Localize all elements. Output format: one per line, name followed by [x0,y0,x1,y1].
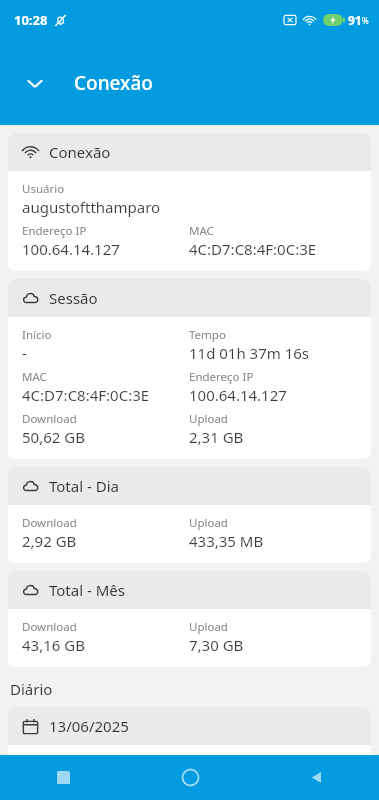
staticText: 11d 01h 37m 16s [189,343,310,363]
staticText: Upload [189,515,228,531]
button[interactable]: 13/06/2025 [8,707,371,800]
button[interactable]: Início [127,755,253,800]
staticText: 4C:D7:C8:4F:0C:3E [22,385,150,405]
staticText: Conexão [74,70,153,96]
staticText: Download [22,515,77,531]
staticText: Upload [189,411,228,427]
button[interactable]: Total - Mês [8,571,371,667]
button[interactable]: Voltar [253,755,379,800]
staticText: 43,16 GB [22,635,85,655]
staticText: Endereço IP [22,223,87,239]
staticText: % [362,15,369,26]
staticText: Diário [10,679,53,699]
staticText: Download [22,411,77,427]
staticText: Sessão [49,288,98,308]
staticText: Tempo [189,327,226,343]
staticText: Total - Dia [49,476,119,496]
staticText: 2,31 GB [189,427,244,447]
button[interactable]: Conexão [8,133,371,271]
staticText: 10:28 [14,11,48,29]
staticText: Upload [189,755,228,771]
staticText: Conexão [49,142,111,162]
staticText: 13/06/2025 [49,716,129,736]
button[interactable]: Sessão [8,279,371,459]
staticText: Upload [189,619,228,635]
staticText: 50,62 GB [22,427,85,447]
staticText: Início [22,327,52,343]
staticText: 2,92 GB [22,531,77,551]
staticText: 100.64.14.127 [189,385,287,405]
staticText: 4C:D7:C8:4F:0C:3E [189,239,317,259]
staticText: 433,35 MB [189,531,264,551]
staticText: 100.64.14.127 [22,239,120,259]
button[interactable]: Recentes [0,755,127,800]
staticText: augustoftthamparo [22,197,161,217]
button[interactable]: Expandir [18,66,52,100]
staticText: Download [22,619,77,635]
staticText: 1,12 GB [22,771,77,788]
staticText: Total - Mês [49,580,125,600]
staticText: 122,40 MB [189,771,264,788]
staticText: Endereço IP [189,369,254,385]
staticText: MAC [22,369,47,385]
staticText: Usuário [22,181,65,197]
staticText: 7,30 GB [189,635,244,655]
staticText: 91 [348,12,362,28]
staticText: - [22,343,27,363]
staticText: MAC [189,223,214,239]
button[interactable]: Total - Dia [8,467,371,563]
